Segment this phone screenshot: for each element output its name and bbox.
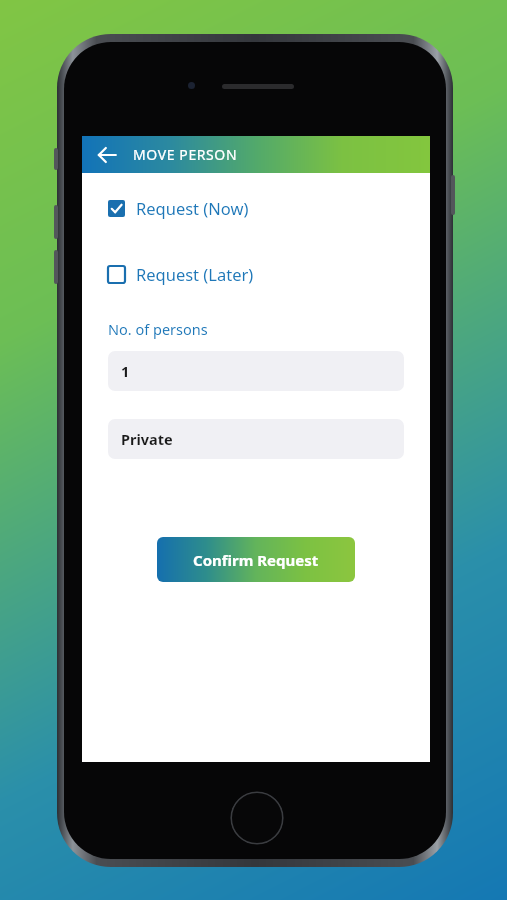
button[interactable]: Back xyxy=(90,138,124,172)
staticText: MOVE PERSON xyxy=(133,145,238,164)
staticText: Confirm Request xyxy=(193,550,319,570)
staticText: No. of persons xyxy=(108,319,208,339)
staticText: Request (Now) xyxy=(136,197,249,219)
staticText: Request (Later) xyxy=(136,263,254,285)
button[interactable]: Private xyxy=(108,419,404,459)
button[interactable]: Request (Later) xyxy=(96,259,416,289)
button[interactable]: 1 xyxy=(108,351,404,391)
staticText: 1 xyxy=(121,361,130,381)
button[interactable]: Confirm Request xyxy=(157,537,355,582)
button[interactable]: Request (Now) xyxy=(96,193,416,223)
staticText: Private xyxy=(121,429,173,449)
